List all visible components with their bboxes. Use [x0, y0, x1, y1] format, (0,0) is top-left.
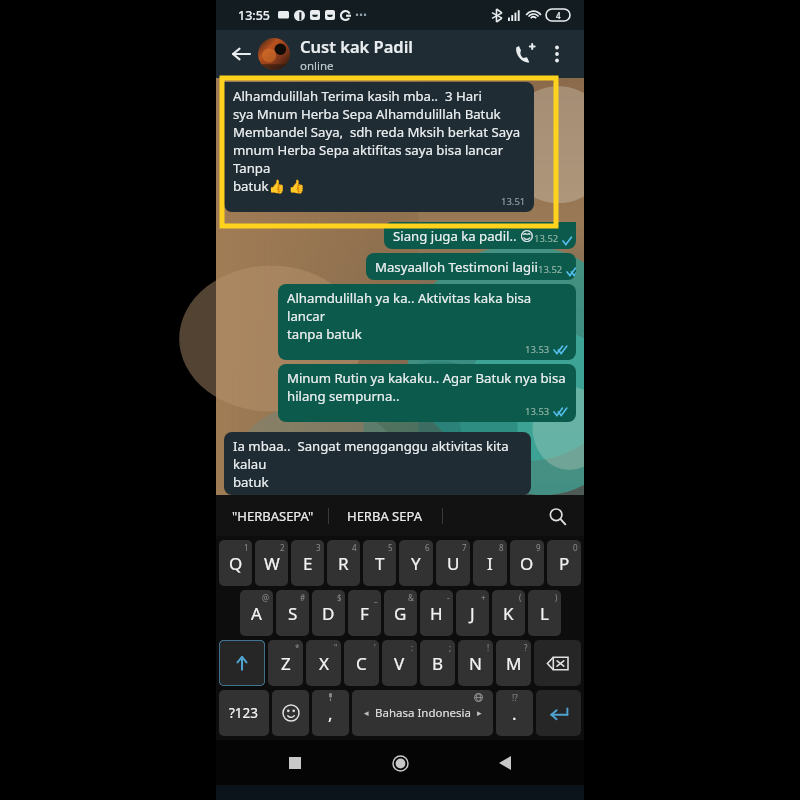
- staticText: .: [512, 702, 517, 725]
- staticText: tanpa batuk: [287, 325, 362, 343]
- staticText: 7: [462, 542, 467, 553]
- button[interactable]: Q: [219, 540, 252, 586]
- button[interactable]: Ia mbaa.. Sangat mengganggu aktivitas ki…: [224, 432, 531, 495]
- staticText: 0: [573, 542, 578, 553]
- staticText: ◂: [364, 708, 369, 718]
- button[interactable]: Minum Rutin ya kakaku.. Agar Batuk nya b…: [278, 364, 576, 422]
- button[interactable]: F: [348, 590, 381, 636]
- staticText: Ia mbaa.. Sangat mengganggu aktivitas ki…: [233, 437, 523, 473]
- button[interactable]: Siang juga ka padil.. 😊: [384, 222, 576, 249]
- button[interactable]: H: [420, 590, 453, 636]
- staticText: 1: [244, 542, 249, 553]
- staticText: H: [430, 602, 443, 625]
- button[interactable]: A: [240, 590, 273, 636]
- staticText: Siang juga ka padil.. 😊: [393, 227, 534, 245]
- staticText: S: [288, 602, 298, 625]
- button[interactable]: Video call: [508, 37, 542, 71]
- button[interactable]: Shift: [219, 640, 265, 686]
- button[interactable]: V: [382, 640, 417, 686]
- button[interactable]: Backspace: [534, 640, 581, 686]
- button[interactable]: More options: [542, 39, 572, 69]
- button[interactable]: Recent apps: [276, 744, 314, 782]
- button[interactable]: Search: [544, 503, 570, 529]
- staticText: #: [300, 592, 306, 603]
- staticText: 8: [499, 542, 504, 553]
- staticText: ,: [328, 702, 333, 725]
- staticText: 13.52: [538, 263, 563, 276]
- staticText: N: [469, 652, 482, 675]
- button[interactable]: Profile photo: [258, 38, 290, 70]
- button[interactable]: G: [384, 590, 417, 636]
- staticText: ": [334, 642, 338, 653]
- button[interactable]: E: [291, 540, 324, 586]
- staticText: +: [481, 592, 486, 603]
- button[interactable]: T: [363, 540, 396, 586]
- staticText: mnum Herba Sepa aktifitas saya bisa lanc…: [233, 141, 526, 177]
- button[interactable]: K: [492, 590, 525, 636]
- button[interactable]: B: [420, 640, 455, 686]
- button[interactable]: HERBA SEPA: [343, 507, 426, 525]
- staticText: !?: [512, 692, 518, 703]
- staticText: (: [519, 592, 522, 603]
- button[interactable]: J: [456, 590, 489, 636]
- staticText: M: [506, 652, 522, 675]
- staticText: @: [262, 592, 270, 603]
- staticText: 4: [352, 542, 357, 553]
- button[interactable]: O: [510, 540, 544, 586]
- button[interactable]: I: [473, 540, 507, 586]
- staticText: :: [411, 642, 414, 653]
- staticText: Minum Rutin ya kakaku.. Agar Batuk nya b…: [287, 369, 566, 387]
- button[interactable]: M: [496, 640, 531, 686]
- button[interactable]: ◂: [352, 690, 493, 736]
- staticText: 13:55: [238, 7, 271, 24]
- button[interactable]: D: [312, 590, 345, 636]
- staticText: F: [360, 602, 369, 625]
- staticText: "HERBASEPA": [232, 507, 314, 525]
- button[interactable]: Home: [381, 744, 419, 782]
- staticText: A: [251, 602, 262, 625]
- button[interactable]: ,: [312, 690, 349, 736]
- button[interactable]: C: [344, 640, 379, 686]
- button[interactable]: .: [496, 690, 533, 736]
- staticText: HERBA SEPA: [347, 507, 422, 525]
- staticText: ': [374, 642, 376, 653]
- button[interactable]: Enter: [536, 690, 581, 736]
- button[interactable]: Back: [486, 744, 524, 782]
- button[interactable]: Back: [228, 41, 254, 67]
- button[interactable]: L: [528, 590, 561, 636]
- staticText: 3: [316, 542, 321, 553]
- button[interactable]: Emoji keyboard: [272, 690, 309, 736]
- staticText: T: [375, 552, 385, 575]
- button[interactable]: W: [255, 540, 288, 586]
- button[interactable]: S: [276, 590, 309, 636]
- staticText: Alhamdulillah ya ka.. Aktivitas kaka bis…: [287, 289, 568, 325]
- button[interactable]: Cust kak Padil: [300, 35, 508, 74]
- staticText: &: [408, 592, 414, 603]
- staticText: sya Mnum Herba Sepa Alhamdulillah Batuk: [233, 105, 501, 123]
- staticText: U: [447, 552, 460, 575]
- button[interactable]: Masyaalloh Testimoni lagii: [366, 253, 576, 280]
- button[interactable]: Y: [399, 540, 433, 586]
- staticText: C: [356, 652, 367, 675]
- staticText: J: [470, 602, 475, 625]
- staticText: 6: [425, 542, 430, 553]
- button[interactable]: P: [547, 540, 581, 586]
- staticText: E: [303, 552, 313, 575]
- button[interactable]: ?123: [219, 690, 269, 736]
- staticText: G: [394, 602, 407, 625]
- staticText: 13.53: [525, 343, 550, 356]
- button[interactable]: U: [436, 540, 470, 586]
- staticText: 9: [536, 542, 541, 553]
- button[interactable]: Alhamdulillah ya ka.. Aktivitas kaka bis…: [278, 284, 576, 360]
- button[interactable]: R: [327, 540, 360, 586]
- staticText: Alhamdulillah Terima kasih mba.. 3 Hari: [233, 87, 482, 105]
- staticText: Z: [281, 652, 291, 675]
- button[interactable]: Alhamdulillah Terima kasih mba.. 3 Hari: [224, 82, 534, 212]
- button[interactable]: N: [458, 640, 493, 686]
- button[interactable]: Z: [268, 640, 303, 686]
- staticText: K: [503, 602, 514, 625]
- staticText: W: [264, 552, 280, 575]
- button[interactable]: "HERBASEPA": [228, 507, 318, 525]
- staticText: online: [300, 58, 334, 74]
- button[interactable]: X: [306, 640, 341, 686]
